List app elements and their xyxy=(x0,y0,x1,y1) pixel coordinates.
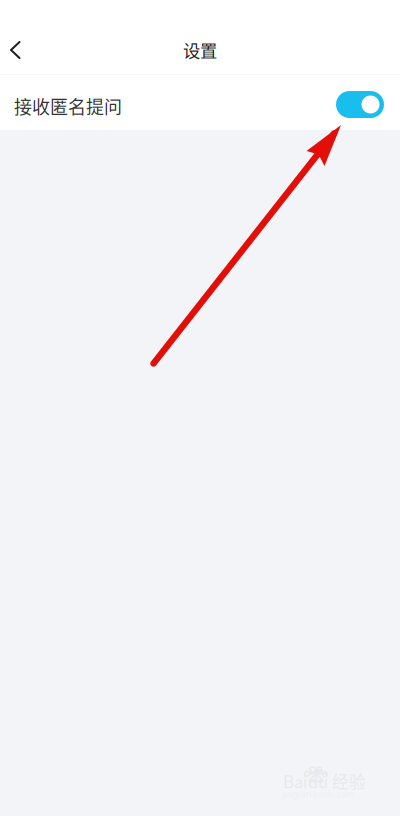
button[interactable]: 接收匿名提问 xyxy=(0,75,400,130)
button[interactable]: 返回 xyxy=(0,28,33,72)
staticText: 设置 xyxy=(183,37,217,63)
staticText: 接收匿名提问 xyxy=(14,93,122,119)
staticText: Baidu 经验 xyxy=(283,769,366,793)
